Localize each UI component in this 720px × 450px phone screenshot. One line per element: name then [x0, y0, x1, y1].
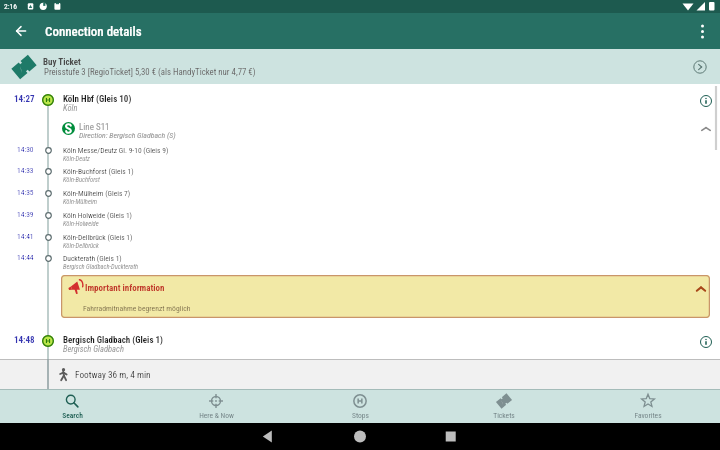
- button[interactable]: More options: [684, 13, 720, 49]
- button[interactable]: 14:30: [0, 144, 720, 164]
- button[interactable]: 14:39: [0, 209, 720, 229]
- button[interactable]: Stops: [288, 389, 432, 423]
- staticText: 14:44: [17, 253, 34, 262]
- staticText: Search: [62, 411, 83, 420]
- staticText: 14:35: [17, 188, 34, 197]
- staticText: Köln-Buchforst (Gleis 1): [63, 167, 134, 176]
- staticText: Here & Now: [199, 411, 234, 420]
- staticText: Bergisch Gladbach (Gleis 1): [63, 335, 164, 346]
- button[interactable]: Favorites: [576, 389, 720, 423]
- button[interactable]: 14:44: [0, 252, 720, 272]
- button[interactable]: 14:35: [0, 187, 720, 207]
- staticText: Duckterath (Gleis 1): [63, 254, 122, 263]
- staticText: Favorites: [634, 411, 662, 420]
- staticText: Footway 36 m, 4 min: [75, 369, 151, 380]
- staticText: Köln-Holweide: [63, 220, 99, 228]
- staticText: 14:33: [17, 166, 34, 175]
- button[interactable]: Station info: [695, 90, 717, 112]
- button[interactable]: 14:41: [0, 231, 720, 251]
- staticText: Preisstufe 3 [RegioTicket] 5,30 € (als H…: [44, 67, 256, 77]
- staticText: Köln-Buchforst: [63, 176, 100, 184]
- staticText: Connection details: [45, 24, 142, 39]
- button[interactable]: Tickets: [432, 389, 576, 423]
- staticText: Köln: [63, 103, 78, 113]
- button[interactable]: Collapse stops: [695, 118, 717, 140]
- staticText: Direction: Bergisch Gladbach (S): [79, 131, 176, 140]
- staticText: Line S11: [79, 122, 110, 133]
- staticText: Köln Holweide (Gleis 1): [63, 211, 133, 220]
- button[interactable]: Back: [3, 13, 39, 49]
- button[interactable]: 14:33: [0, 165, 720, 185]
- staticText: Köln-Deutz: [63, 155, 90, 163]
- button[interactable]: Buy Ticket: [0, 49, 720, 84]
- button[interactable]: 14:48: [0, 334, 720, 356]
- staticText: 14:30: [17, 145, 34, 154]
- staticText: Bergisch Gladbach-Duckterath: [63, 263, 139, 271]
- staticText: Köln-Dellbrück: [63, 242, 99, 250]
- staticText: Important information: [85, 283, 165, 294]
- staticText: Fahrradmitnahme begrenzt möglich: [83, 304, 191, 313]
- button[interactable]: Open ticket shop: [688, 55, 712, 79]
- button[interactable]: 14:27: [0, 93, 720, 115]
- staticText: Stops: [352, 411, 369, 420]
- staticText: 14:48: [14, 335, 35, 346]
- button[interactable]: Search: [0, 389, 144, 423]
- button[interactable]: Here & Now: [144, 389, 288, 423]
- staticText: 14:27: [14, 94, 35, 105]
- staticText: Bergisch Gladbach: [63, 344, 124, 354]
- button[interactable]: Line S11: [0, 119, 720, 141]
- staticText: Tickets: [493, 411, 515, 420]
- staticText: Köln-Mülheim: [63, 198, 98, 206]
- staticText: 14:39: [17, 210, 34, 219]
- staticText: Köln Hbf (Gleis 10): [63, 94, 132, 105]
- staticText: Köln Messe/Deutz Gl. 9-10 (Gleis 9): [63, 146, 169, 155]
- staticText: Buy Ticket: [43, 57, 81, 68]
- staticText: Köln-Dellbrück (Gleis 1): [63, 233, 133, 242]
- button[interactable]: Station info: [695, 331, 717, 353]
- staticText: Köln-Mülheim (Gleis 7): [63, 189, 131, 198]
- staticText: 14:41: [17, 232, 34, 241]
- staticText: 2:16: [4, 2, 17, 11]
- button[interactable]: Important information: [61, 275, 710, 318]
